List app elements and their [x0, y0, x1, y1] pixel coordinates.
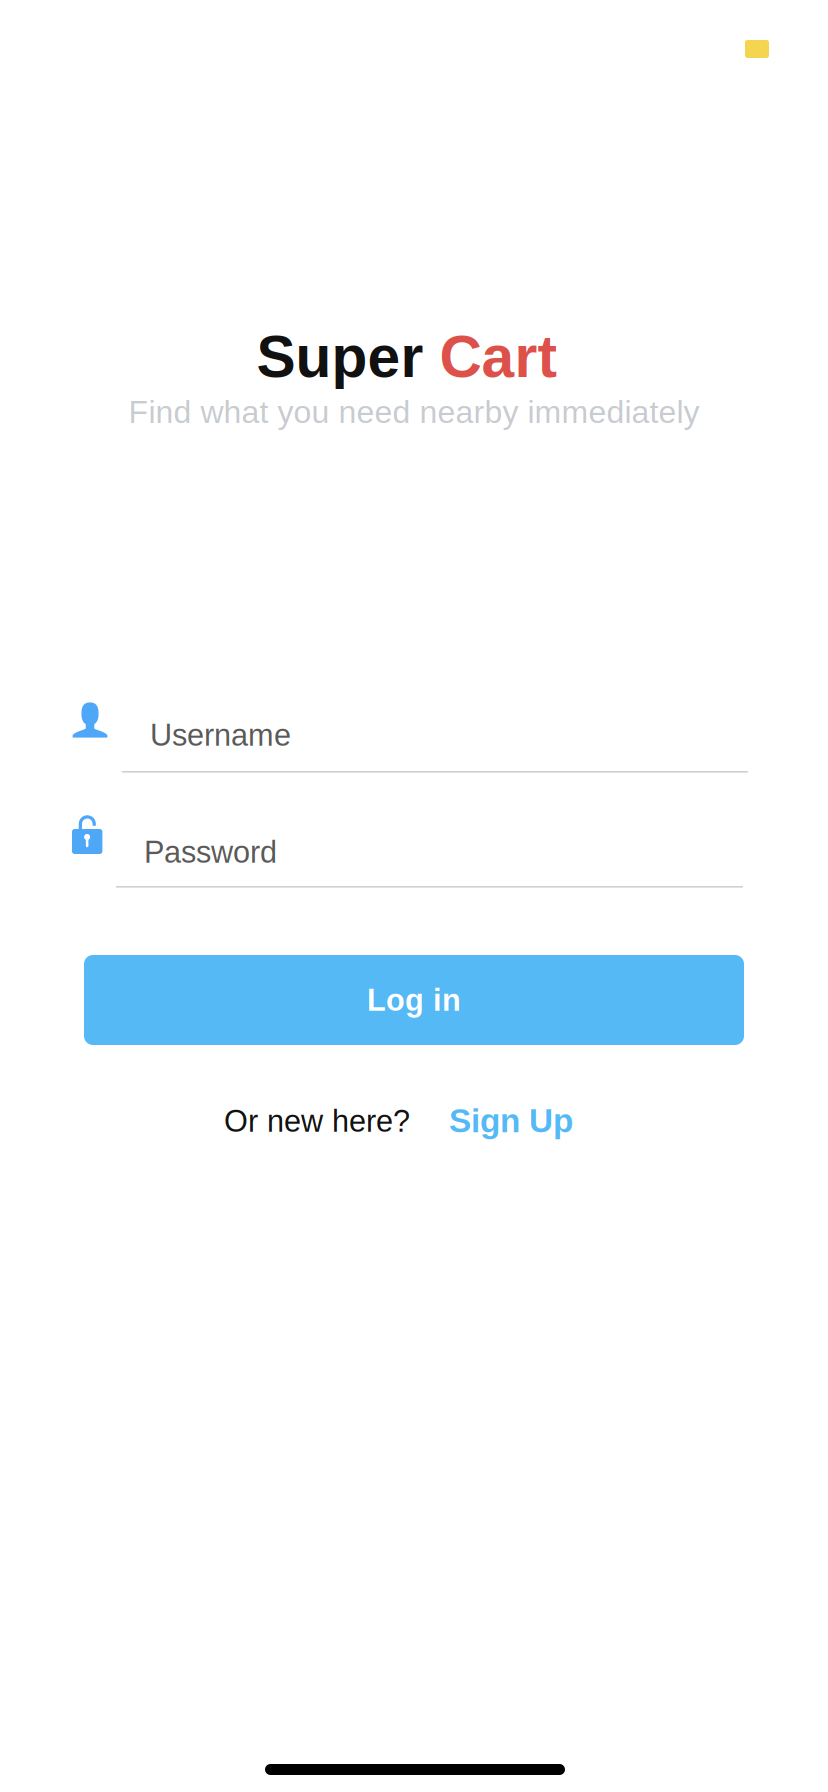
button[interactable]: Sign Up	[449, 1102, 573, 1139]
staticText: Sign Up	[449, 1102, 573, 1139]
staticText: Password	[144, 835, 277, 869]
button[interactable]: Password	[72, 815, 743, 887]
button[interactable]: Log in	[84, 955, 744, 1045]
staticText: Find what you need nearby immediately	[128, 394, 699, 430]
staticText: Log in	[367, 983, 461, 1017]
staticText: Super	[256, 324, 423, 389]
staticText: Or new here?	[224, 1104, 410, 1138]
staticText: Username	[150, 718, 291, 752]
button[interactable]: Username	[72, 702, 748, 784]
staticText: Cart	[439, 324, 557, 389]
